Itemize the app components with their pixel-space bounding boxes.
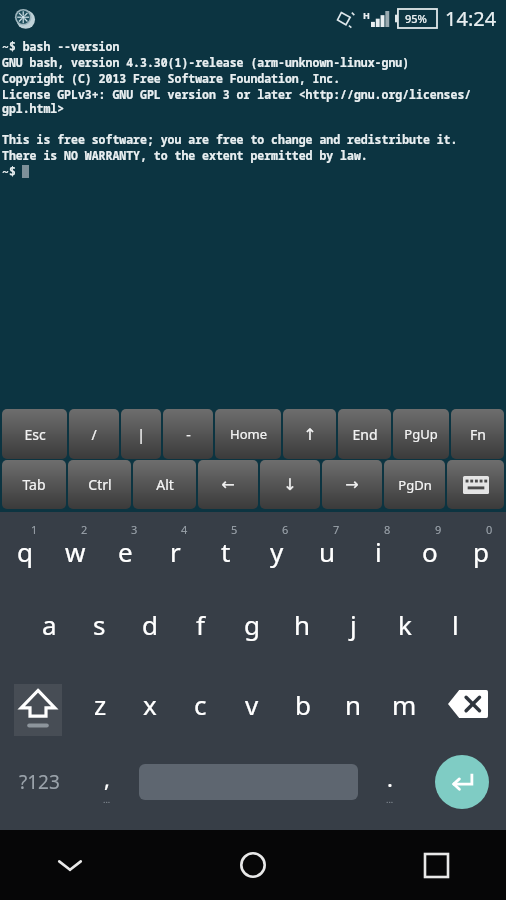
staticText: Home (230, 425, 267, 443)
button[interactable]: | (121, 409, 161, 459)
button[interactable]: j (328, 591, 379, 670)
button[interactable]: a (24, 591, 74, 670)
staticText: t (221, 534, 231, 569)
staticText: ~$ (2, 164, 23, 180)
staticText: y (270, 534, 284, 569)
button[interactable]: 1 (0, 512, 50, 591)
staticText: 95% (405, 11, 427, 26)
button[interactable]: Backspace (430, 670, 506, 750)
staticText: - (186, 425, 191, 444)
staticText: Ctrl (88, 475, 112, 494)
button[interactable]: → (322, 460, 382, 509)
button[interactable]: End (338, 409, 391, 459)
button[interactable]: b (277, 670, 328, 750)
staticText: Alt (156, 475, 174, 494)
button[interactable]: d (124, 591, 175, 670)
button[interactable]: l (430, 591, 481, 670)
button[interactable]: Shift (0, 670, 75, 750)
staticText: d (142, 607, 158, 642)
button[interactable]: f (175, 591, 226, 670)
button[interactable]: ← (198, 460, 258, 509)
button[interactable]: ↓ (260, 460, 320, 509)
staticText: PgDn (398, 476, 432, 494)
staticText: 8 (384, 522, 391, 537)
staticText: 9 (435, 522, 442, 537)
button[interactable]: Fn (451, 409, 504, 459)
staticText: o (422, 534, 438, 569)
staticText: License GPLv3+: GNU GPL version 3 or lat… (2, 87, 506, 116)
staticText: End (352, 425, 378, 444)
staticText: . (387, 763, 393, 793)
button[interactable]: Esc (2, 409, 67, 459)
button[interactable]: c (175, 670, 226, 750)
staticText: ← (221, 475, 235, 494)
button[interactable]: v (226, 670, 277, 750)
staticText: | (137, 425, 145, 444)
button[interactable]: - (163, 409, 213, 459)
button[interactable]: 0 (455, 512, 506, 591)
staticText: c (194, 687, 207, 722)
staticText: p (473, 534, 489, 569)
button[interactable]: Tab (2, 460, 66, 509)
button[interactable]: 4 (150, 512, 200, 591)
staticText: s (93, 607, 106, 642)
staticText: u (319, 534, 336, 569)
staticText: / (91, 425, 97, 444)
staticText: k (398, 607, 412, 642)
button[interactable]: . (362, 750, 417, 830)
button[interactable]: m (379, 670, 430, 750)
button[interactable]: ?123 (0, 750, 79, 830)
staticText: ?123 (19, 769, 60, 795)
button[interactable]: x (125, 670, 175, 750)
button[interactable]: g (226, 591, 277, 670)
button[interactable]: k (379, 591, 430, 670)
button[interactable]: Ctrl (68, 460, 131, 509)
button[interactable]: ~$ bash --version (0, 36, 506, 409)
staticText: Copyright (C) 2013 Free Software Foundat… (2, 71, 341, 87)
button[interactable]: 7 (302, 512, 353, 591)
staticText: j (350, 607, 357, 642)
staticText: 5 (231, 522, 238, 537)
button[interactable]: Home (215, 409, 281, 459)
staticText: v (245, 687, 259, 722)
button[interactable]: z (75, 670, 125, 750)
button[interactable]: PgUp (393, 409, 449, 459)
button[interactable]: ↑ (283, 409, 336, 459)
staticText: ~$ bash --version (2, 39, 120, 55)
button[interactable]: Home (223, 835, 283, 895)
staticText: Fn (470, 425, 486, 444)
button[interactable]: h (277, 591, 328, 670)
button[interactable]: Recents (406, 835, 466, 895)
staticText: n (345, 687, 362, 722)
staticText: Esc (24, 425, 46, 444)
button[interactable]: 9 (404, 512, 455, 591)
staticText: GNU bash, version 4.3.30(1)-release (arm… (2, 55, 410, 71)
staticText: l (452, 607, 459, 642)
staticText: 7 (333, 522, 340, 537)
button[interactable]: 3 (100, 512, 150, 591)
staticText: f (196, 607, 205, 642)
staticText: i (375, 534, 382, 569)
button[interactable]: , (79, 750, 134, 830)
button[interactable]: PgDn (384, 460, 445, 509)
button[interactable]: / (69, 409, 119, 459)
button[interactable]: 2 (50, 512, 100, 591)
staticText: q (17, 534, 33, 569)
staticText: z (94, 687, 107, 722)
staticText: g (244, 607, 260, 642)
button[interactable]: n (328, 670, 379, 750)
staticText: r (170, 534, 181, 569)
staticText: 14:24 (445, 5, 497, 32)
button[interactable]: Hide keyboard (40, 835, 100, 895)
staticText: 4 (181, 522, 188, 537)
button[interactable]: s (74, 591, 124, 670)
button[interactable]: 6 (251, 512, 302, 591)
button[interactable]: 5 (200, 512, 251, 591)
button[interactable]: Enter (435, 755, 489, 809)
staticText: This is free software; you are free to c… (2, 132, 458, 148)
staticText: a (42, 607, 57, 642)
button[interactable]: Hide keyboard (447, 460, 504, 509)
button[interactable]: 8 (353, 512, 404, 591)
button[interactable]: Alt (133, 460, 196, 509)
